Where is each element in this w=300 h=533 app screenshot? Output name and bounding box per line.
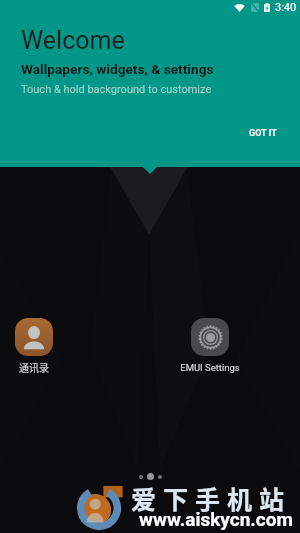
staticText: www.aiskycn.com	[139, 508, 293, 530]
button[interactable]: EMUI Settings	[168, 318, 252, 373]
button[interactable]: 通讯录	[8, 318, 59, 374]
staticText: EMUI Settings	[180, 362, 240, 373]
staticText: Touch & hold background to customize	[21, 83, 212, 96]
staticText: 3:40	[275, 1, 297, 14]
staticText: GOT IT	[249, 128, 277, 139]
button[interactable]: GOT IT	[240, 121, 286, 146]
staticText: 爱下手机站	[131, 480, 292, 516]
staticText: Wallpapers, widgets, & settings	[21, 61, 214, 77]
staticText: Welcome	[21, 26, 125, 55]
staticText: 通讯录	[19, 360, 49, 374]
